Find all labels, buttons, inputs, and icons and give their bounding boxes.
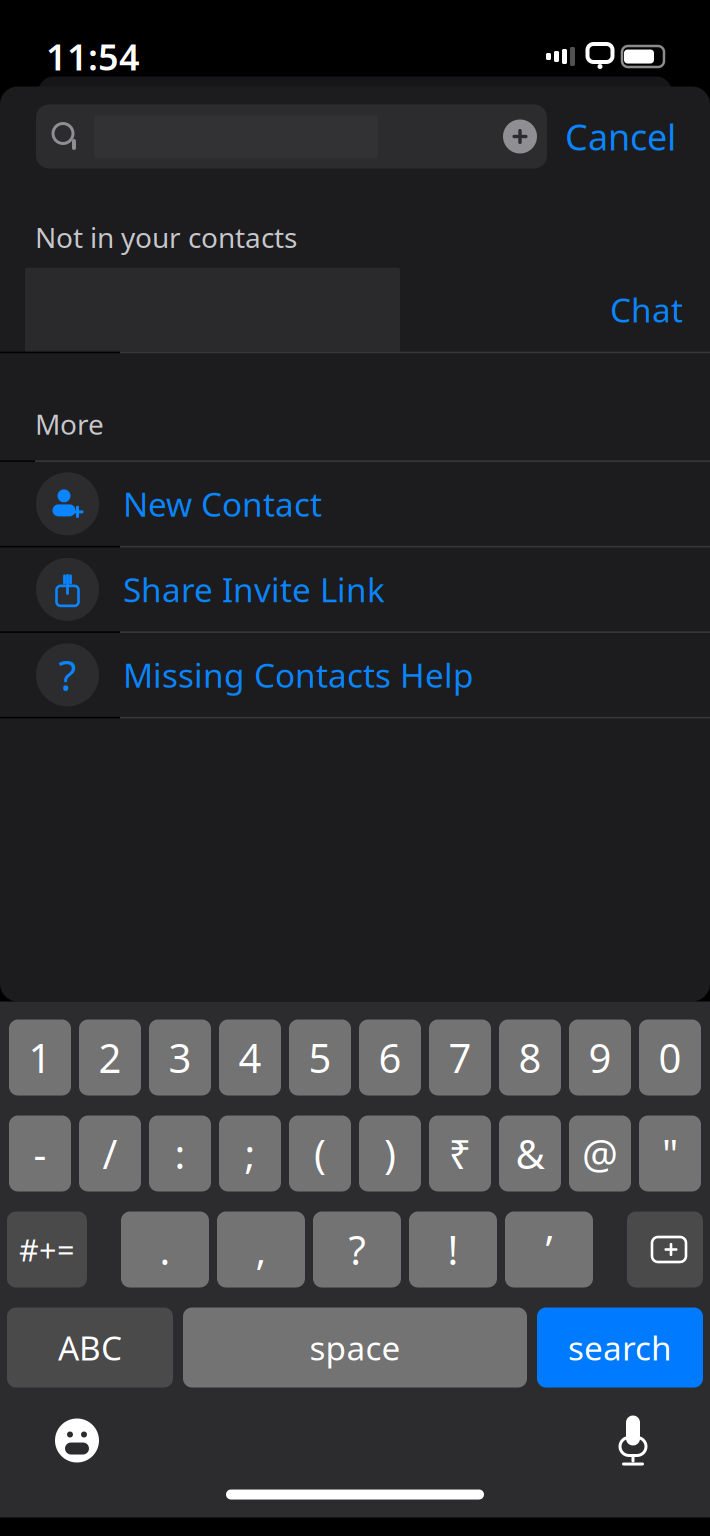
staticText: 4 [238,1031,261,1084]
staticText: - [33,1127,46,1180]
button[interactable]: ) [359,1115,421,1191]
staticText: 7 [448,1031,471,1084]
button[interactable]: ? [313,1211,401,1287]
button[interactable]: Dictation [598,1405,668,1475]
staticText: More [35,405,104,442]
button[interactable]: ; [219,1115,281,1191]
button[interactable]: Share Invite Link [0,547,710,633]
button[interactable]: ? [0,633,710,718]
staticText: & [515,1127,544,1180]
staticText: 1 [28,1031,51,1084]
staticText: ) [384,1127,396,1180]
button[interactable]: ( [289,1115,351,1191]
staticText: 5 [308,1031,331,1084]
button[interactable]: . [121,1211,209,1287]
button[interactable]: Delete [627,1211,703,1287]
button[interactable]: 4 [219,1019,281,1095]
button[interactable]: #+= [7,1211,87,1287]
staticText: ! [447,1223,458,1276]
staticText: 8 [518,1031,541,1084]
button[interactable]: space [183,1307,527,1387]
staticText: 0 [658,1031,681,1084]
button[interactable]: 7 [429,1019,491,1095]
button[interactable]: ! [409,1211,497,1287]
button[interactable]: search [537,1307,703,1387]
button[interactable]: 5 [289,1019,351,1095]
staticText: @ [582,1127,618,1180]
button[interactable]: , [217,1211,305,1287]
staticText: Missing Contacts Help [123,653,474,697]
button[interactable]: Cancel [547,104,694,168]
staticText: : [174,1127,185,1180]
staticText: 6 [378,1031,401,1084]
staticText: , [255,1223,266,1276]
button[interactable]: 8 [499,1019,561,1095]
button[interactable]: ABC [7,1307,173,1387]
button[interactable]: New Contact [0,462,710,547]
staticText: 2 [98,1031,121,1084]
staticText: ₹ [448,1127,471,1180]
staticText: Chat [610,288,683,332]
button[interactable]: @ [569,1115,631,1191]
staticText: 11:54 [46,33,140,80]
staticText: " [662,1127,678,1180]
staticText: ? [58,647,76,702]
button[interactable]: ₹ [429,1115,491,1191]
staticText: ( [314,1127,326,1180]
staticText: ? [348,1223,365,1276]
button[interactable]: - [9,1115,71,1191]
staticText: ; [244,1127,255,1180]
button[interactable]: 3 [149,1019,211,1095]
button[interactable]: 9 [569,1019,631,1095]
staticText: New Contact [123,482,322,526]
button[interactable]: 2 [79,1019,141,1095]
staticText: Not in your contacts [35,218,297,256]
staticText: / [102,1127,117,1180]
button[interactable]: 0 [639,1019,701,1095]
button[interactable]: / [79,1115,141,1191]
staticText: 3 [168,1031,191,1084]
staticText: search [568,1325,672,1370]
staticText: . [159,1223,170,1276]
staticText: Share Invite Link [123,567,385,611]
button[interactable]: Clear text [493,106,547,166]
button[interactable]: Chat [0,268,710,353]
button[interactable]: 1 [9,1019,71,1095]
staticText: ABC [58,1325,122,1370]
button[interactable]: " [639,1115,701,1191]
button[interactable]: Emoji keyboard [42,1405,112,1475]
button[interactable]: : [149,1115,211,1191]
button[interactable]: 6 [359,1019,421,1095]
staticText: Cancel [565,113,676,160]
button[interactable]: & [499,1115,561,1191]
staticText: space [309,1325,400,1370]
staticText: ’ [545,1223,552,1276]
staticText: #+= [19,1229,75,1270]
staticText: 9 [588,1031,611,1084]
button[interactable]: ’ [505,1211,593,1287]
